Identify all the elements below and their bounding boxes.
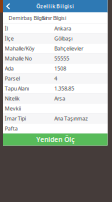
staticText: Tapu Alanı xyxy=(5,85,29,92)
staticText: Mevkii xyxy=(5,105,21,112)
staticText: Mahalle/Köy xyxy=(5,45,35,52)
staticText: Ana Taşınmaz xyxy=(54,115,88,122)
staticText: Gölbaşı xyxy=(54,35,72,42)
button[interactable]: Yeniden Ölç xyxy=(3,133,107,145)
staticText: İmar Tipi xyxy=(5,115,26,122)
button[interactable]: Demirbaş Bilgisi xyxy=(3,12,39,23)
button[interactable]: Back xyxy=(3,0,13,12)
staticText: 4 xyxy=(54,75,57,82)
staticText: İlçe xyxy=(5,35,14,42)
staticText: Parsel xyxy=(5,75,20,82)
staticText: Demirbaş Bilgisi xyxy=(8,14,46,22)
staticText: Ankara xyxy=(54,25,71,32)
staticText: 1.358,85 xyxy=(54,85,74,92)
staticText: Sınır Bilgisi xyxy=(42,14,66,22)
staticText: Bahçelievler xyxy=(54,45,83,52)
staticText: 55555 xyxy=(54,55,69,62)
staticText: İl xyxy=(5,25,8,32)
staticText: Ada xyxy=(5,65,14,72)
staticText: Nitelik xyxy=(5,95,20,102)
staticText: Pafta xyxy=(5,125,18,132)
staticText: Arsa xyxy=(54,95,65,102)
staticText: 1508 xyxy=(54,65,66,72)
staticText: Özellik Bilgisi xyxy=(36,3,74,10)
button[interactable]: Sınır Bilgisi xyxy=(39,12,69,23)
staticText: Yeniden Ölç xyxy=(36,135,74,144)
staticText: Mahalle No xyxy=(5,55,32,62)
